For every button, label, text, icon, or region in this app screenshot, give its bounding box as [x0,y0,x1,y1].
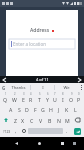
button[interactable]: B [45,114,54,125]
button[interactable]: 9 [67,92,75,103]
button[interactable]: Enter [71,127,83,135]
staticText: 9 [71,92,73,96]
staticText: 4 [30,92,32,96]
staticText: K [65,106,69,113]
button[interactable]: Enter a location [9,39,75,49]
staticText: Enter a location [13,41,47,47]
staticText: H [49,106,53,113]
staticText: G [2,85,6,91]
staticText: O [69,96,74,103]
button[interactable]: Emoji [20,125,28,137]
button[interactable]: K [63,103,71,114]
staticText: B [48,117,52,124]
button[interactable]: S [15,103,23,114]
button[interactable]: 8 [59,92,67,103]
button[interactable]: 0 [75,92,83,103]
staticText: We [63,85,70,91]
staticText: J [58,106,60,113]
staticText: F [34,106,37,113]
staticText: 0 [78,92,80,96]
button[interactable]: 4 [27,92,35,103]
button[interactable]: Back [12,139,21,148]
staticText: N [57,117,61,124]
staticText: S [18,106,21,113]
staticText: A [9,106,13,113]
button[interactable]: . [63,125,71,137]
button[interactable]: G [39,103,47,114]
staticText: 1 [5,92,7,96]
button[interactable]: 2 [10,92,19,103]
staticText: Address [30,27,50,34]
staticText: X [21,117,25,124]
staticText: 7 [54,92,56,96]
staticText: 5 [39,92,41,96]
staticText: 3 [23,92,25,96]
staticText: E [22,96,25,103]
button[interactable]: M [63,114,72,125]
button[interactable]: ?123 [1,125,12,137]
button[interactable]: Z [11,114,19,125]
staticText: L [74,106,77,113]
staticText: W [12,96,17,103]
button[interactable]: Google [0,83,7,92]
staticText: P [77,96,81,103]
button[interactable]: Previous [2,77,7,82]
staticText: 6 [47,92,49,96]
button[interactable]: Thanks [7,83,30,92]
button[interactable]: 5 [35,92,43,103]
button[interactable]: N [54,114,63,125]
button[interactable]: More options [78,83,84,92]
button[interactable]: 1 [1,92,10,103]
staticText: V [39,117,43,124]
staticText: D [25,106,29,113]
button[interactable]: X [19,114,27,125]
button[interactable]: C [27,114,36,125]
button[interactable]: 6 [43,92,51,103]
staticText: , [15,128,17,135]
staticText: Thanks [11,85,26,91]
staticText: G [41,106,45,113]
staticText: 2 [14,92,16,96]
staticText: C [30,117,34,124]
button[interactable]: Recents [58,139,67,148]
button[interactable]: Backspace [72,114,83,125]
button[interactable]: D [23,103,31,114]
staticText: U [53,96,57,103]
staticText: 8 [62,92,64,96]
staticText: R [29,96,33,103]
button[interactable]: H [47,103,55,114]
staticText: Y [46,96,49,103]
button[interactable]: F [31,103,39,114]
staticText: ?123 [3,129,11,134]
button[interactable]: I [31,83,54,92]
button[interactable]: 3 [19,92,27,103]
button[interactable]: , [12,125,20,137]
button[interactable]: L [71,103,79,114]
button[interactable]: V [36,114,45,125]
button[interactable]: Home [35,139,44,148]
staticText: I [62,96,64,103]
button[interactable]: J [55,103,63,114]
button[interactable]: Shift [1,114,11,125]
staticText: Q [3,96,8,103]
staticText: M [65,117,70,124]
staticText: . [66,128,68,135]
staticText: 4 of 11 [36,77,49,82]
button[interactable]: Next [77,77,82,82]
button[interactable]: 7 [51,92,59,103]
button[interactable]: Hide keyboard [70,139,79,148]
staticText: Z [14,117,17,124]
button[interactable]: A [6,103,15,114]
staticText: I [42,85,44,91]
button[interactable]: We [55,83,78,92]
staticText: T [38,96,41,103]
